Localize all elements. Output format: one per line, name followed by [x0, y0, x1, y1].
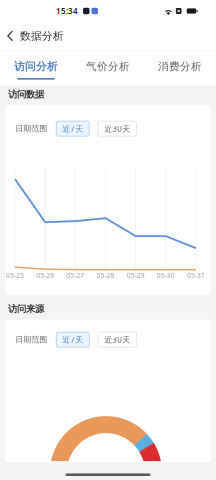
staticText: 05-27 [66, 271, 84, 280]
staticText: 15:34 [56, 6, 78, 16]
staticText: 05-30 [157, 271, 175, 280]
button[interactable]: 消费分析 [144, 51, 216, 85]
button[interactable]: 近30天 [98, 332, 136, 347]
staticText: 05-29 [127, 271, 145, 280]
staticText: 近30天 [104, 334, 130, 345]
staticText: 消费分析 [158, 60, 202, 73]
staticText: 05-26 [36, 271, 54, 280]
button[interactable]: 近30天 [98, 121, 136, 136]
button[interactable]: 近7天 [56, 121, 89, 136]
staticText: 气价分析 [86, 60, 130, 73]
staticText: 05-25 [6, 271, 24, 280]
button[interactable]: 近7天 [56, 332, 89, 347]
staticText: 访问数据 [8, 89, 44, 100]
staticText: 日期范围 [15, 335, 47, 344]
staticText: 访问分析 [14, 60, 58, 73]
staticText: 数据分析 [20, 29, 64, 42]
staticText: 访问来源 [8, 303, 44, 315]
button[interactable]: Back [0, 23, 20, 48]
staticText: 近30天 [104, 123, 130, 134]
button[interactable]: 访问分析 [0, 51, 72, 85]
staticText: 日期范围 [15, 124, 47, 134]
staticText: 05-31 [187, 271, 205, 280]
staticText: 05-28 [96, 271, 114, 280]
button[interactable]: 气价分析 [72, 51, 144, 85]
staticText: 近7天 [62, 123, 83, 134]
staticText: 近7天 [62, 334, 83, 345]
